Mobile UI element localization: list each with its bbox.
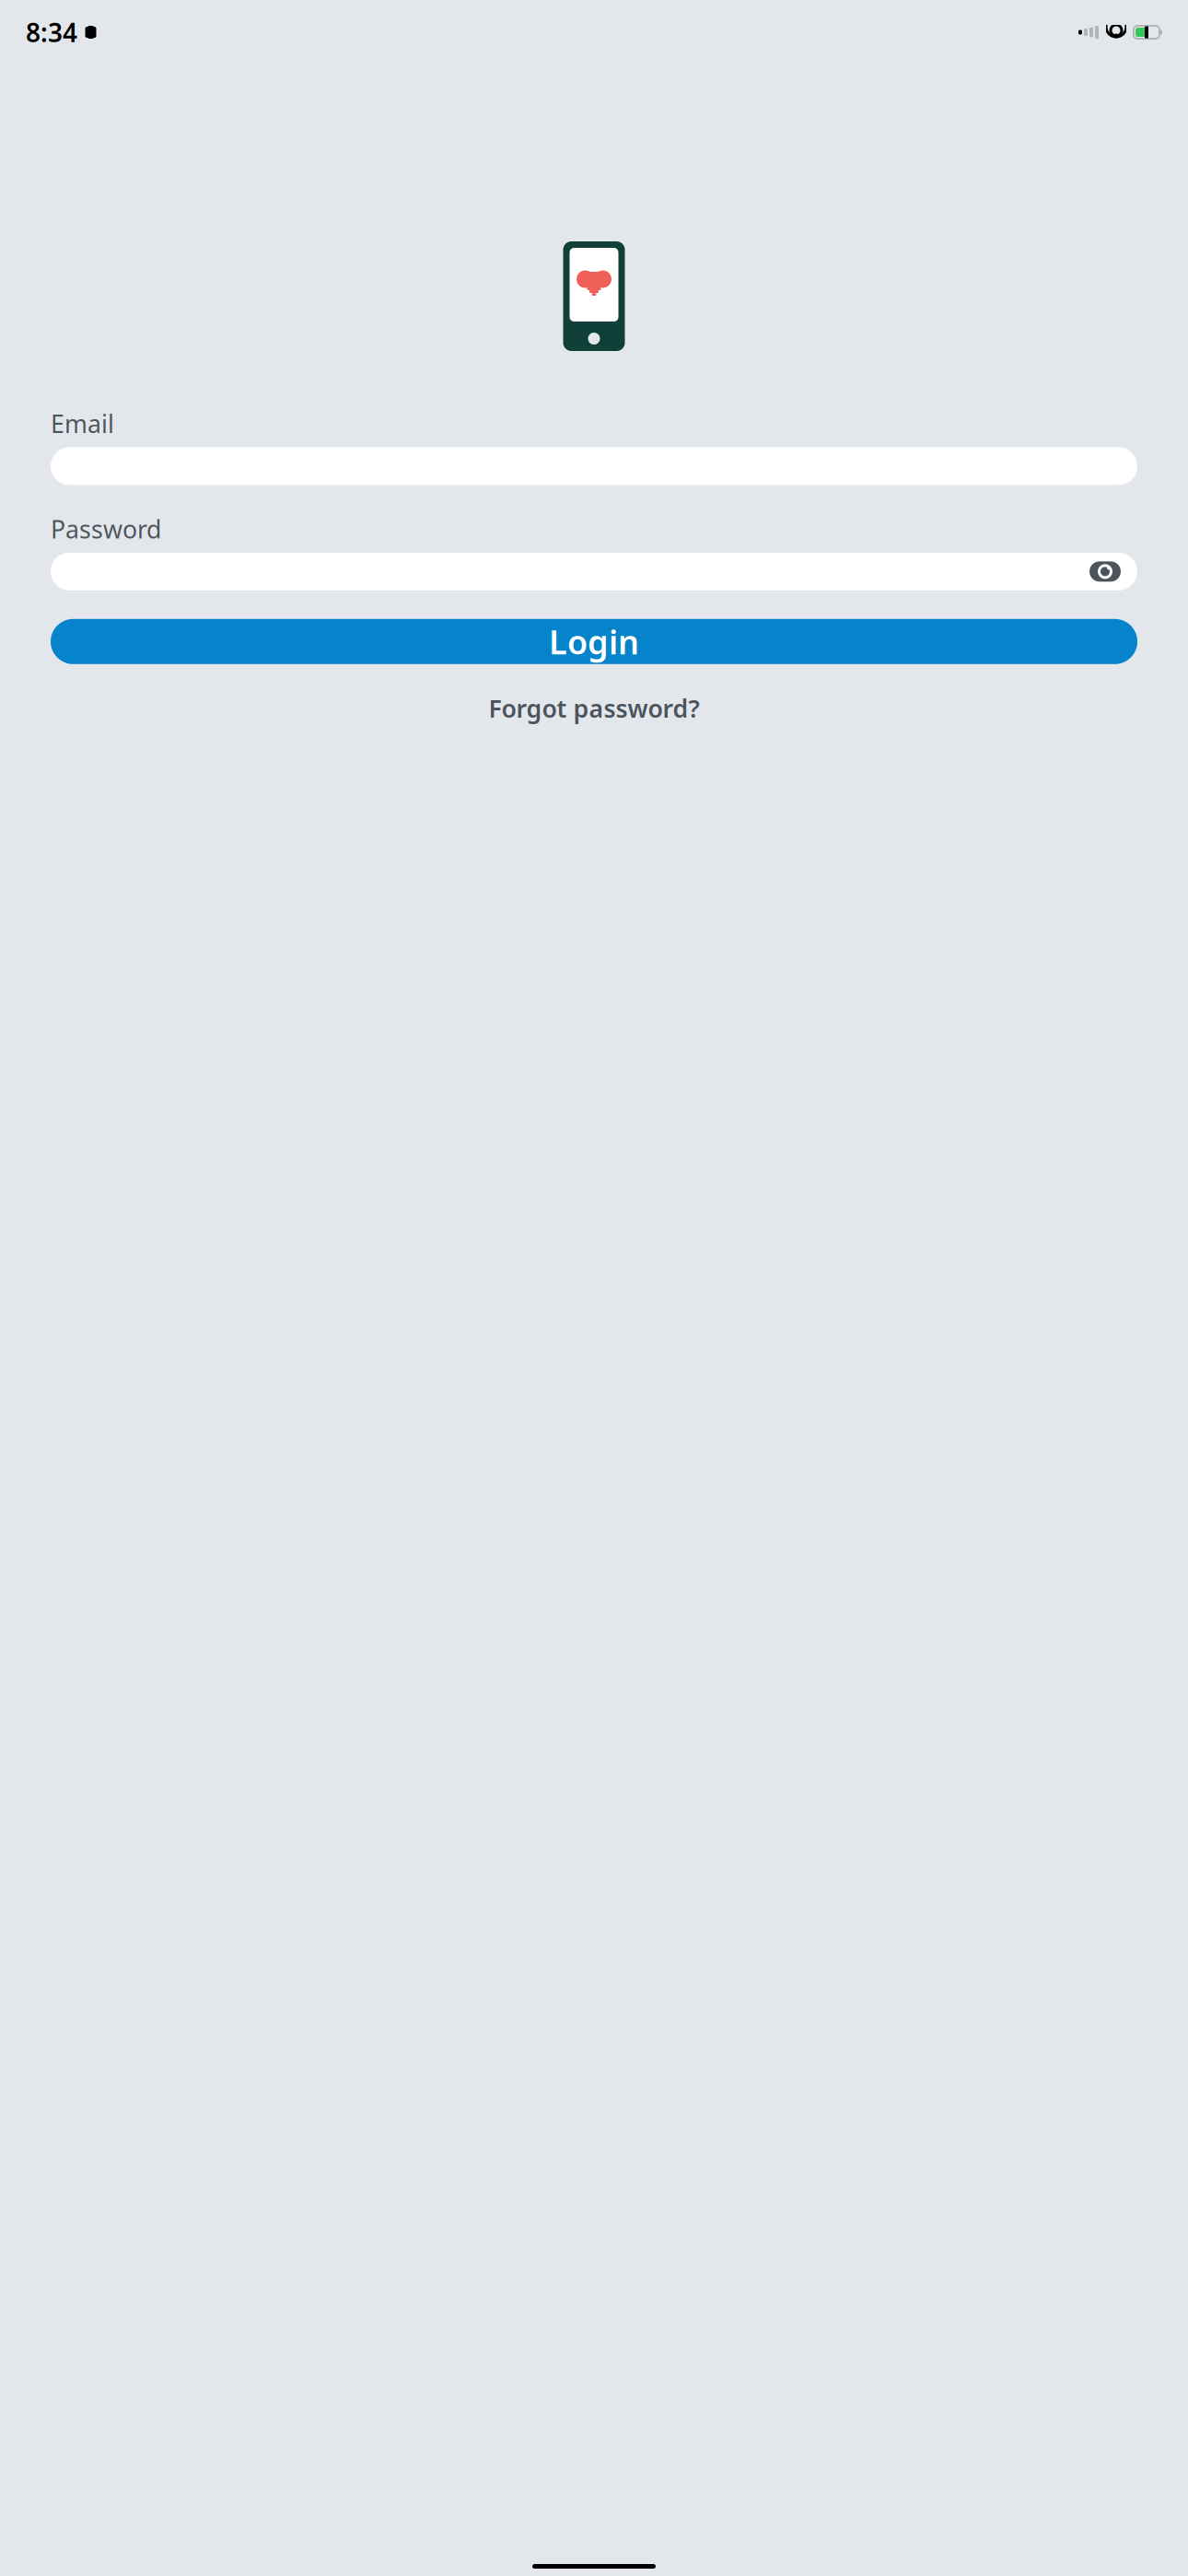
staticText: Login <box>549 619 639 664</box>
button[interactable]: Login <box>51 619 1137 664</box>
button[interactable] <box>51 553 1137 590</box>
staticText: Password <box>51 513 161 545</box>
button[interactable]: Forgot password? <box>476 684 712 732</box>
staticText: Email <box>51 407 114 440</box>
staticText: Forgot password? <box>489 692 699 724</box>
staticText: 8:34 <box>26 15 77 49</box>
